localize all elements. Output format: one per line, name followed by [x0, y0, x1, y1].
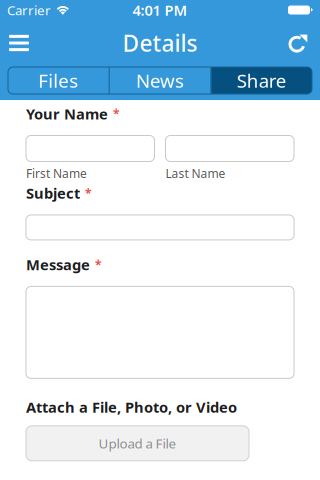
staticText: Last Name [165, 165, 225, 181]
button[interactable]: Menu [0, 24, 38, 62]
button[interactable]: Refresh [279, 24, 317, 62]
staticText: 4:01 PM [132, 0, 187, 20]
staticText: * [113, 106, 120, 122]
staticText: Share [237, 68, 287, 93]
staticText: First Name [26, 165, 87, 181]
staticText: Message [26, 255, 90, 274]
staticText: Carrier [7, 1, 51, 19]
button[interactable]: Files [8, 67, 109, 94]
staticText: News [136, 68, 184, 93]
staticText: Attach a File, Photo, or Video [26, 397, 237, 417]
staticText: Subject [26, 183, 80, 203]
staticText: Files [38, 68, 78, 93]
staticText: Details [122, 28, 197, 58]
staticText: Your Name [26, 104, 108, 123]
staticText: Upload a File [98, 434, 176, 452]
button[interactable]: Share [211, 67, 312, 94]
staticText: * [85, 185, 92, 201]
button[interactable]: News [110, 67, 210, 94]
button[interactable]: Upload a File [26, 426, 249, 461]
staticText: * [95, 257, 102, 273]
